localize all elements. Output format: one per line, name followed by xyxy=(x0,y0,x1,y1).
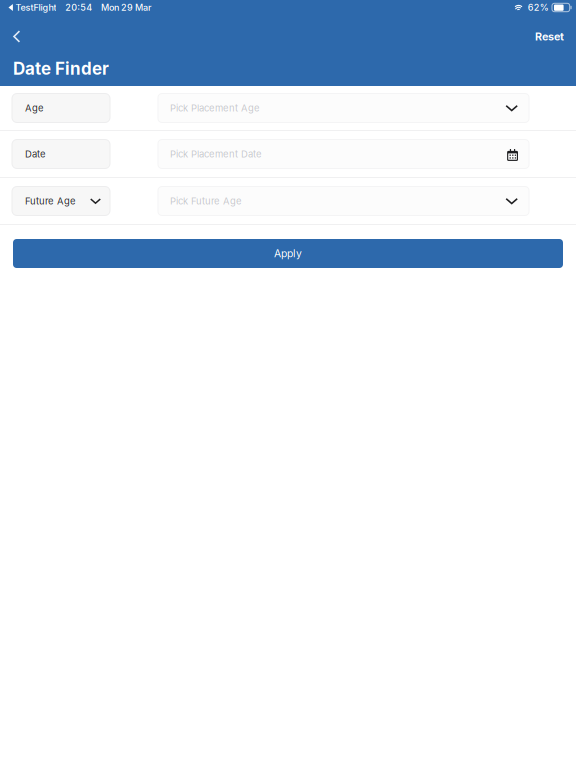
staticText: 62% xyxy=(528,2,549,13)
staticText: TestFlight xyxy=(15,2,56,13)
staticText: Date xyxy=(25,148,46,160)
staticText: Apply xyxy=(274,247,302,260)
button[interactable]: Pick Placement Date xyxy=(158,139,529,168)
button[interactable]: Date xyxy=(12,139,110,168)
button[interactable]: Pick Future Age xyxy=(158,186,529,215)
staticText: Pick Placement Age xyxy=(170,102,260,114)
staticText: Mon 29 Mar xyxy=(101,2,152,13)
button[interactable]: Age xyxy=(12,93,110,122)
staticText: Age xyxy=(25,102,44,114)
button[interactable]: Future Age xyxy=(12,186,110,215)
staticText: Reset xyxy=(535,30,564,43)
staticText: Pick Future Age xyxy=(170,195,242,207)
staticText: Date Finder xyxy=(13,58,109,79)
button[interactable]: Pick Placement Age xyxy=(158,93,529,122)
button[interactable]: Reset xyxy=(523,15,576,58)
staticText: 20:54 xyxy=(65,2,92,13)
button[interactable]: Back xyxy=(0,15,35,58)
staticText: Pick Placement Date xyxy=(170,148,262,160)
staticText: Future Age xyxy=(25,195,76,207)
button[interactable]: Apply xyxy=(13,239,563,268)
